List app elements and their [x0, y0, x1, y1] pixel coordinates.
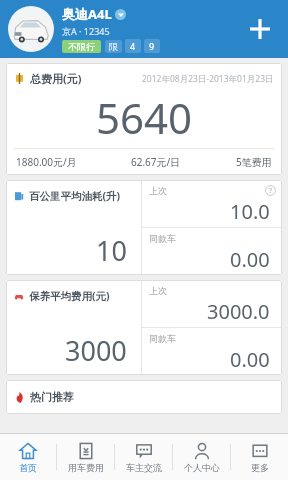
button[interactable]: 用车费用	[57, 434, 114, 480]
button[interactable]: 同款车	[142, 228, 282, 275]
button[interactable]: 不限行	[68, 41, 95, 52]
staticText: 5笔费用	[236, 155, 272, 169]
staticText: 3000.0	[207, 298, 270, 325]
staticText: 限	[109, 41, 118, 52]
staticText: 同款车	[149, 233, 176, 244]
staticText: 奥迪A4L	[62, 5, 112, 23]
button[interactable]: 更多	[231, 434, 288, 480]
button[interactable]: 添加	[238, 7, 282, 51]
button[interactable]: 上次	[142, 280, 282, 327]
staticText: 百公里平均油耗(升)	[29, 189, 121, 203]
staticText: 不限行	[68, 41, 95, 52]
staticText: 3000	[65, 332, 127, 369]
button[interactable]: 车主交流	[115, 434, 172, 480]
staticText: 0.00	[230, 246, 270, 273]
button[interactable]: 首页	[0, 434, 56, 480]
staticText: 62.67元/日	[131, 155, 181, 169]
staticText: 4	[130, 40, 136, 52]
staticText: 个人中心	[184, 462, 220, 473]
staticText: 总费用(元)	[30, 71, 82, 86]
button[interactable]: 百公里平均油耗(升)	[6, 180, 141, 275]
staticText: 2012年08月23日-2013年01月23日	[142, 73, 274, 85]
staticText: 京A · 12345	[62, 25, 110, 37]
staticText: 5640	[96, 89, 193, 146]
staticText: 车主交流	[126, 462, 162, 473]
staticText: 同款车	[149, 333, 176, 344]
staticText: 首页	[19, 462, 37, 473]
staticText: 10.0	[230, 198, 270, 225]
button[interactable]: 帮助	[265, 185, 276, 196]
staticText: 0.00	[230, 346, 270, 373]
staticText: 热门推荐	[30, 390, 74, 404]
staticText: 用车费用	[68, 462, 104, 473]
button[interactable]: 车辆头像	[8, 6, 54, 52]
button[interactable]: 保养平均费用(元)	[6, 280, 141, 375]
staticText: 保养平均费用(元)	[29, 289, 110, 303]
staticText: 10	[96, 232, 127, 269]
staticText: 1880.00元/月	[16, 155, 77, 169]
staticText: 上次	[149, 285, 167, 296]
button[interactable]: 同款车	[142, 328, 282, 375]
staticText: 更多	[251, 462, 269, 473]
staticText: ?	[269, 186, 273, 196]
staticText: 9	[149, 40, 155, 52]
button[interactable]: 热门推荐	[6, 380, 282, 414]
button[interactable]: 展开	[115, 9, 126, 20]
staticText: 上次	[149, 185, 167, 196]
button[interactable]: 个人中心	[173, 434, 230, 480]
button[interactable]: 上次	[142, 180, 282, 227]
